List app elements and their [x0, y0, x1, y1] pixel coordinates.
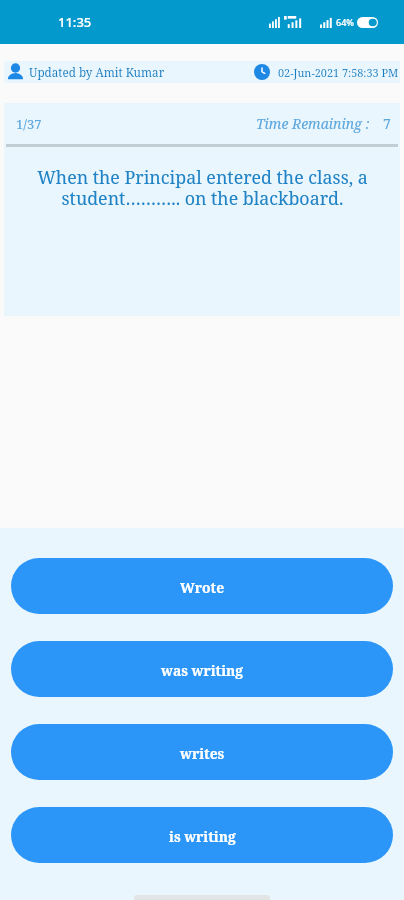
staticText: Wrote: [180, 578, 225, 597]
staticText: 1/37: [16, 115, 42, 133]
staticText: When the Principal entered the class, a …: [37, 165, 368, 211]
staticText: writes: [180, 744, 225, 763]
staticText: was writing: [161, 661, 244, 680]
staticText: 7: [383, 114, 391, 133]
staticText: 02-Jun-2021 7:58:33 PM: [278, 65, 399, 80]
staticText: Updated by Amit Kumar: [29, 64, 165, 80]
button[interactable]: was writing: [11, 641, 393, 697]
staticText: 64%: [336, 16, 354, 28]
button[interactable]: writes: [11, 724, 393, 780]
button[interactable]: is writing: [11, 807, 393, 863]
button[interactable]: Wrote: [11, 558, 393, 614]
staticText: is writing: [169, 827, 236, 846]
staticText: 11:35: [58, 13, 92, 31]
staticText: Time Remaining :: [256, 114, 370, 133]
